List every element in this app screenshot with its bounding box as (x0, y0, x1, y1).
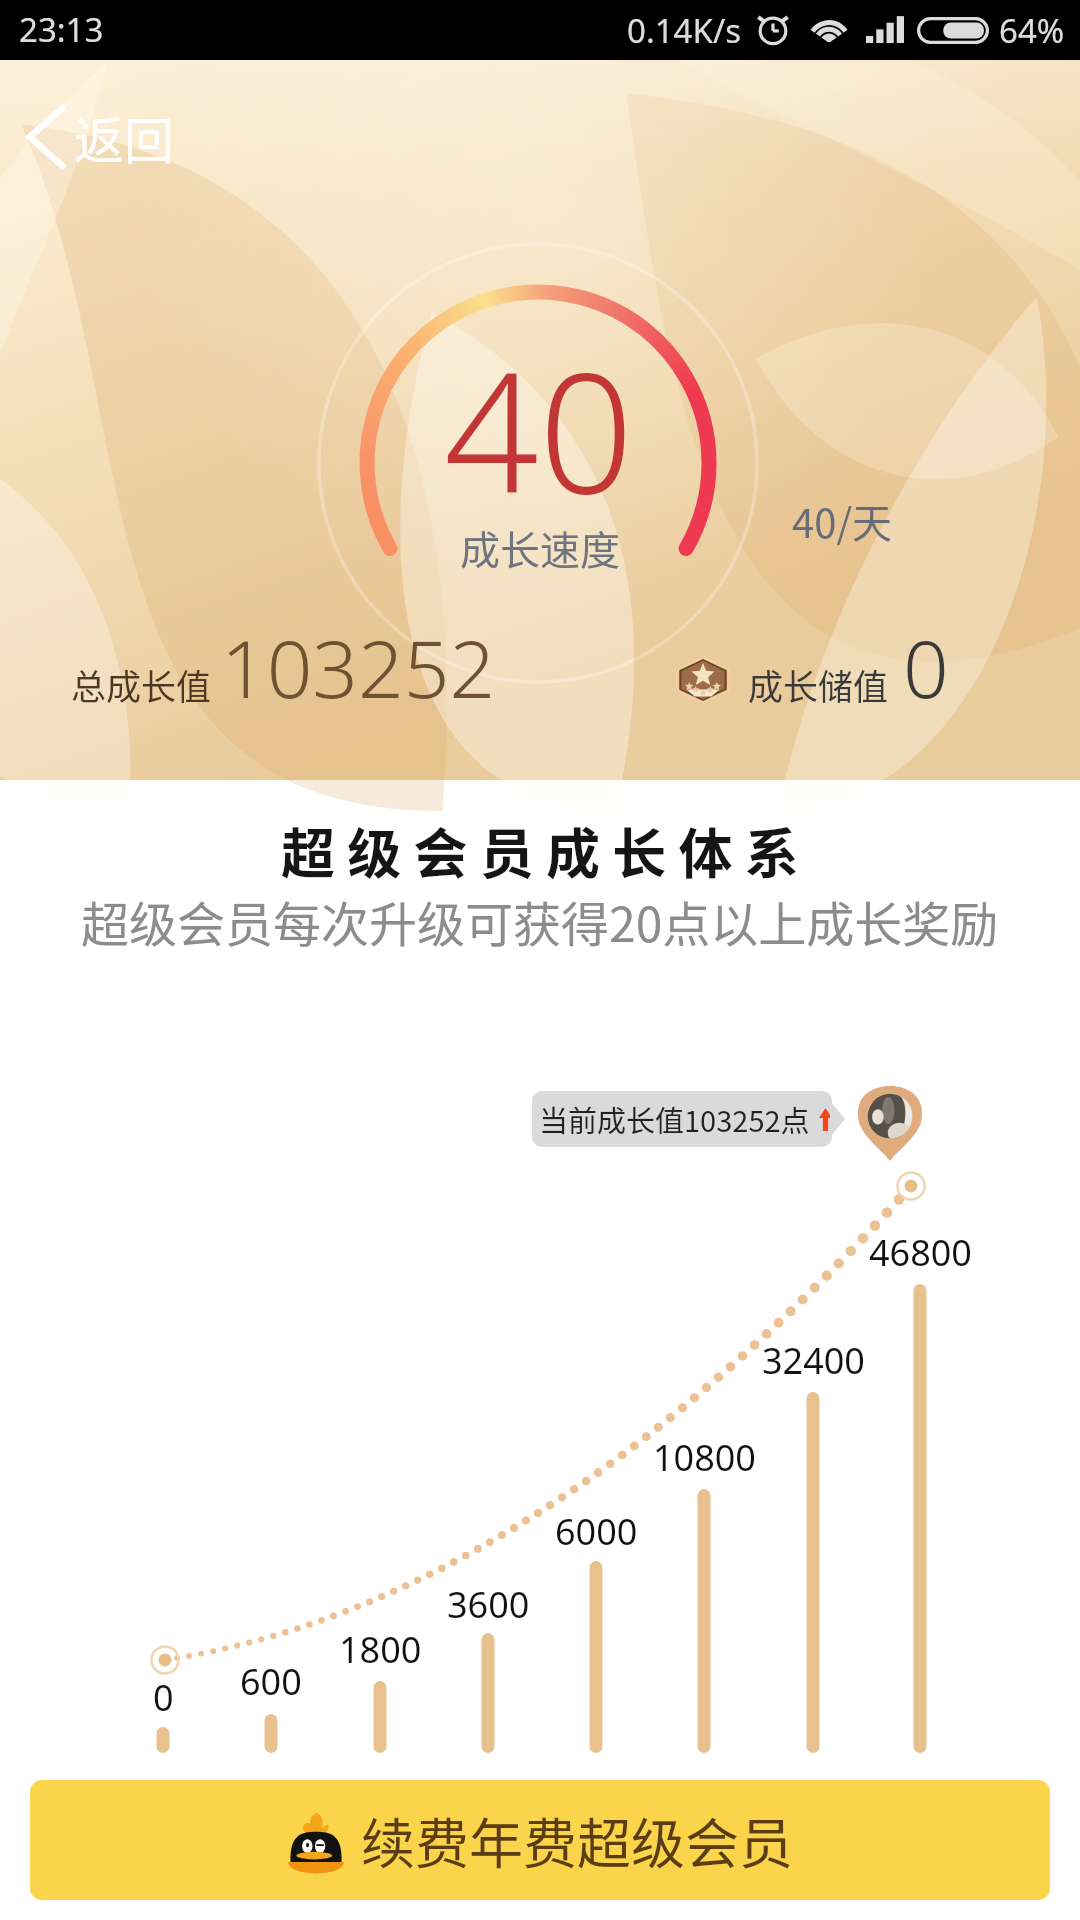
staticText: 40 (444, 316, 634, 542)
staticText: 1800 (339, 1625, 422, 1674)
staticText: 0.14K/s (627, 8, 741, 53)
staticText: 超级会员每次升级可获得20点以上成长奖励 (81, 886, 999, 956)
staticText: 6000 (555, 1507, 638, 1556)
staticText: 23:13 (19, 7, 104, 52)
staticText: 续费年费超级会员 (361, 1801, 793, 1879)
staticText: 返回 (74, 101, 174, 173)
button[interactable]: 当前成长值103252点 (532, 1091, 832, 1147)
staticText: 超 级 会 员 成 长 体 系 (281, 811, 799, 889)
staticText: 当前成长值103252点 (539, 1098, 810, 1140)
staticText: 成长储值 (748, 659, 889, 710)
staticText: 46800 (869, 1228, 972, 1277)
staticText: 103252 (221, 612, 496, 721)
staticText: 10800 (653, 1433, 756, 1482)
staticText: 40/天 (792, 492, 893, 550)
staticText: 总成长值 (71, 659, 212, 710)
staticText: 成长速度 (460, 519, 620, 577)
staticText: 3600 (447, 1580, 530, 1629)
staticText: 32400 (762, 1336, 865, 1385)
button[interactable]: 续费年费超级会员 (30, 1780, 1050, 1900)
staticText: 0 (903, 612, 949, 721)
staticText: 64% (999, 8, 1065, 53)
button[interactable]: 返回 (18, 93, 184, 181)
staticText: 600 (240, 1657, 302, 1706)
staticText: 0 (153, 1673, 174, 1722)
